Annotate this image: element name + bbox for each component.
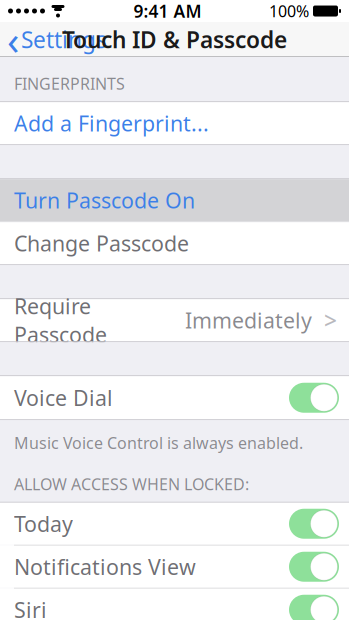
staticText: Notifications View — [14, 553, 196, 581]
staticText: Turn Passcode On — [14, 186, 195, 214]
staticText: Add a Fingerprint... — [14, 109, 209, 137]
staticText: Siri — [14, 596, 47, 620]
staticText: Touch ID & Passcode — [62, 24, 287, 54]
button[interactable]: Require Passcode — [0, 299, 349, 341]
button[interactable]: ‹ — [0, 22, 113, 56]
button[interactable]: Add a Fingerprint... — [0, 102, 349, 144]
staticText: Immediately — [185, 306, 312, 334]
staticText: Require Passcode — [14, 292, 107, 349]
staticText: 9:41 AM — [133, 0, 201, 22]
staticText: Change Passcode — [14, 229, 189, 257]
staticText: Voice Dial — [14, 384, 113, 412]
staticText: Music Voice Control is always enabled. — [14, 432, 303, 453]
staticText: Today — [14, 510, 73, 538]
staticText: Settings — [21, 24, 107, 54]
staticText: ‹ — [7, 13, 19, 66]
button[interactable]: Siri — [0, 589, 349, 620]
button[interactable]: Turn Passcode On — [0, 179, 349, 221]
staticText: FINGERPRINTS — [14, 73, 125, 94]
staticText: 100% — [269, 0, 309, 22]
button[interactable]: Today — [0, 503, 349, 545]
button[interactable]: Notifications View — [0, 546, 349, 588]
staticText: ALLOW ACCESS WHEN LOCKED: — [14, 473, 249, 495]
button[interactable]: Voice Dial — [0, 376, 349, 419]
staticText: > — [324, 305, 337, 335]
button[interactable]: Change Passcode — [0, 222, 349, 264]
